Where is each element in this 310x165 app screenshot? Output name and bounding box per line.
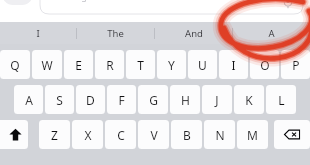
staticText: O bbox=[260, 57, 270, 73]
staticText: I bbox=[231, 57, 236, 73]
button[interactable]: S bbox=[45, 85, 74, 114]
staticText: H bbox=[181, 92, 190, 108]
button[interactable]: R bbox=[95, 50, 124, 79]
staticText: K bbox=[245, 92, 253, 108]
button[interactable]: L bbox=[266, 85, 296, 114]
staticText: B bbox=[183, 127, 191, 143]
staticText: A bbox=[25, 92, 33, 108]
staticText: N bbox=[215, 127, 225, 143]
button[interactable]: O bbox=[250, 50, 279, 79]
staticText: L bbox=[278, 92, 285, 108]
button[interactable]: M bbox=[237, 120, 268, 149]
staticText: I bbox=[36, 27, 40, 40]
button[interactable]: T bbox=[126, 50, 155, 79]
staticText: F bbox=[118, 92, 125, 108]
button[interactable]: U bbox=[188, 50, 217, 79]
button[interactable]: X bbox=[72, 120, 103, 149]
button[interactable]: The bbox=[77, 22, 154, 44]
button[interactable]: Shift bbox=[0, 120, 28, 149]
button[interactable]: I bbox=[219, 50, 248, 79]
button[interactable]: D bbox=[76, 85, 105, 114]
button[interactable]: V bbox=[138, 120, 169, 149]
button[interactable]: Y bbox=[157, 50, 186, 79]
button[interactable]: Backspace bbox=[274, 120, 310, 149]
staticText: C bbox=[117, 127, 125, 143]
button[interactable]: J bbox=[202, 85, 232, 114]
staticText: P bbox=[292, 57, 300, 73]
staticText: G bbox=[149, 92, 158, 108]
staticText: W bbox=[41, 57, 53, 73]
staticText: M bbox=[247, 127, 258, 143]
staticText: J bbox=[215, 92, 219, 108]
button[interactable]: B bbox=[171, 120, 202, 149]
staticText: U bbox=[198, 57, 207, 73]
staticText: R bbox=[106, 57, 114, 73]
button[interactable]: F bbox=[107, 85, 136, 114]
button[interactable]: Q bbox=[0, 50, 30, 79]
button[interactable]: G bbox=[138, 85, 168, 114]
button[interactable]: Z bbox=[39, 120, 70, 149]
staticText: And bbox=[185, 27, 203, 40]
button[interactable]: And bbox=[155, 22, 232, 44]
staticText: D bbox=[86, 92, 95, 108]
staticText: The bbox=[107, 27, 124, 40]
staticText: Q bbox=[10, 57, 20, 73]
staticText: A bbox=[268, 27, 275, 40]
staticText: V bbox=[150, 127, 158, 143]
staticText: S bbox=[56, 92, 63, 108]
button[interactable]: P bbox=[281, 50, 310, 79]
staticText: T bbox=[137, 57, 144, 73]
button[interactable]: K bbox=[234, 85, 264, 114]
staticText: X bbox=[84, 127, 92, 143]
staticText: iMessage bbox=[52, 0, 92, 2]
button[interactable]: C bbox=[105, 120, 136, 149]
button[interactable]: Add attachment bbox=[2, 0, 33, 5]
button[interactable]: iMessage text field bbox=[40, 0, 303, 3]
button[interactable]: A bbox=[233, 22, 310, 44]
staticText: Y bbox=[168, 57, 175, 73]
button[interactable]: N bbox=[204, 120, 235, 149]
button[interactable]: W bbox=[32, 50, 62, 79]
staticText: Z bbox=[51, 127, 58, 143]
button[interactable]: A bbox=[14, 85, 43, 114]
button[interactable]: I bbox=[0, 22, 76, 44]
staticText: E bbox=[75, 57, 82, 73]
button[interactable]: H bbox=[170, 85, 200, 114]
button[interactable]: E bbox=[64, 50, 93, 79]
